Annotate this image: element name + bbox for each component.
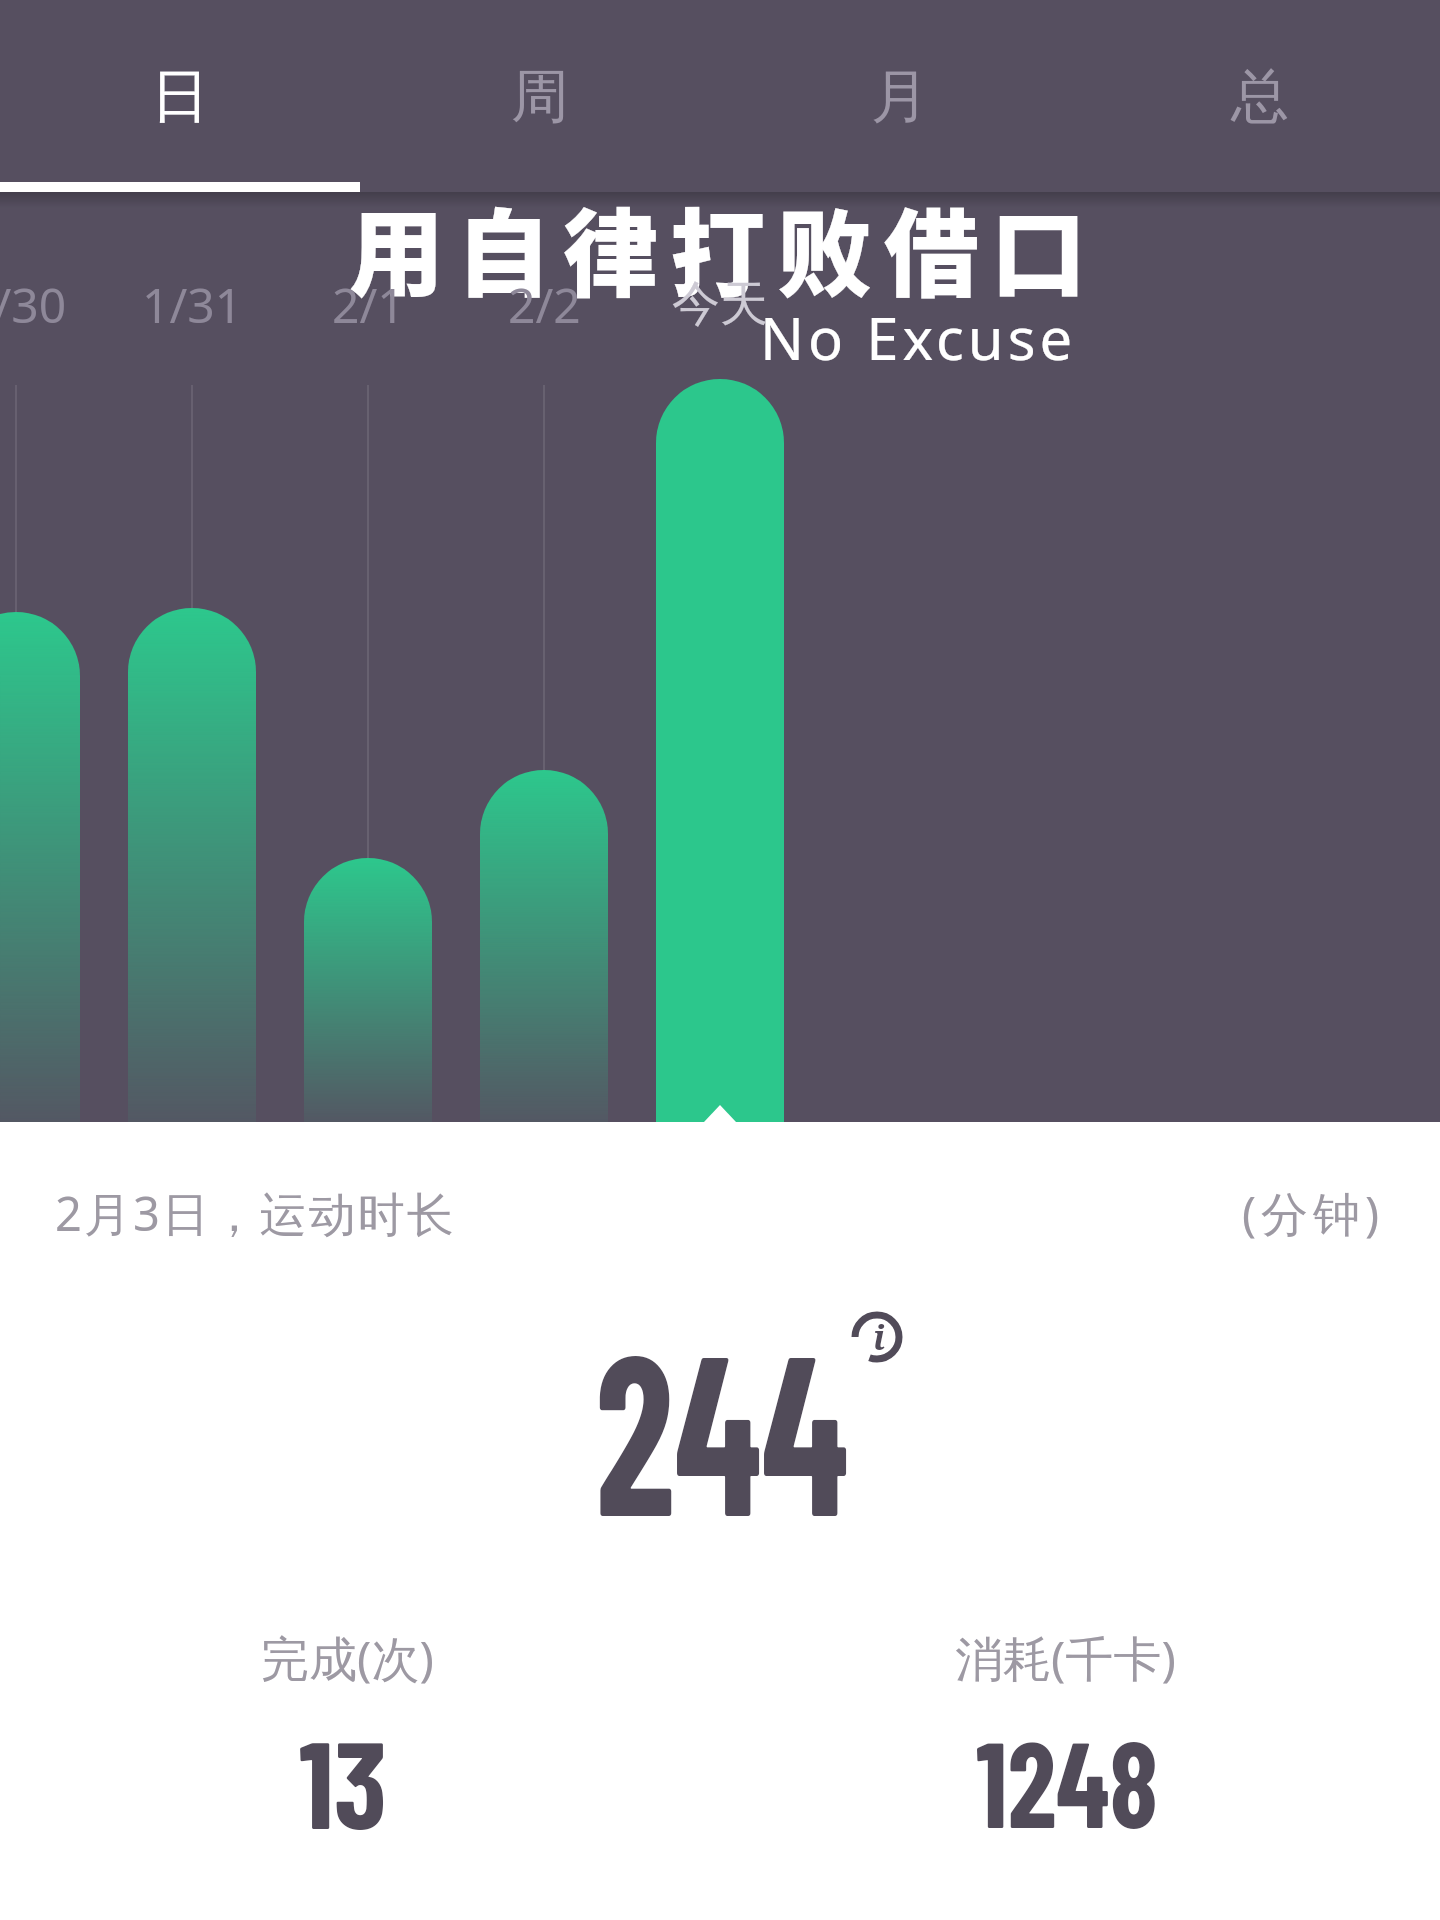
staticText: 1/31: [142, 272, 243, 337]
staticText: 2/2: [508, 272, 581, 337]
button[interactable]: 消耗(千卡): [665, 1508, 1440, 1808]
button[interactable]: [852, 1312, 902, 1362]
staticText: 消耗(千卡): [955, 1625, 1176, 1691]
staticText: 2月3日，运动时长: [55, 1181, 456, 1245]
staticText: 2/1: [332, 272, 405, 337]
staticText: 今天: [672, 274, 768, 334]
staticText: 用自律打败借口: [349, 179, 1099, 317]
staticText: i: [873, 1314, 886, 1360]
staticText: 月: [871, 60, 929, 133]
staticText: (分钟): [1242, 1181, 1385, 1245]
staticText: 总: [1231, 60, 1289, 133]
staticText: 1248: [976, 1708, 1158, 1852]
button[interactable]: 总: [1080, 0, 1440, 192]
staticText: 244: [596, 1291, 849, 1561]
button[interactable]: 月: [720, 0, 1080, 192]
staticText: 完成(次): [261, 1625, 434, 1691]
staticText: 1/30: [0, 272, 67, 337]
button[interactable]: 周: [360, 0, 720, 192]
button[interactable]: 244: [402, 1226, 1042, 1626]
staticText: 13: [299, 1707, 387, 1853]
staticText: 日: [151, 60, 209, 133]
button[interactable]: 完成(次): [0, 1508, 747, 1808]
staticText: 周: [511, 60, 569, 133]
button[interactable]: 日: [0, 0, 360, 192]
staticText: No Excuse: [760, 298, 1077, 377]
